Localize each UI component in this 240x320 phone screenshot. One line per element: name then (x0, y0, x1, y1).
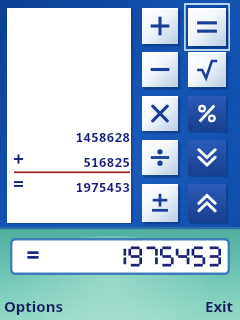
button[interactable]: Result display 1975453 (10, 238, 230, 275)
button[interactable]: Multiply (142, 96, 178, 131)
staticText: 516825 (40, 153, 130, 169)
staticText: Exit (205, 296, 234, 316)
button[interactable]: Options (4, 296, 63, 316)
button[interactable]: Percent (188, 96, 226, 131)
staticText: 1458628 (40, 128, 130, 144)
button[interactable]: Equals (188, 8, 226, 46)
button[interactable]: Exit (205, 296, 234, 316)
button[interactable]: Scroll down (188, 184, 226, 222)
button[interactable]: Plus (142, 8, 178, 44)
button[interactable]: Scroll up (188, 140, 226, 175)
button[interactable]: Square root (188, 52, 226, 87)
button[interactable]: Plus minus (142, 184, 178, 222)
staticText: Options (4, 296, 63, 316)
staticText: 1975453 (40, 178, 130, 194)
button[interactable]: Minus (142, 52, 178, 87)
button[interactable]: Divide (142, 140, 178, 175)
